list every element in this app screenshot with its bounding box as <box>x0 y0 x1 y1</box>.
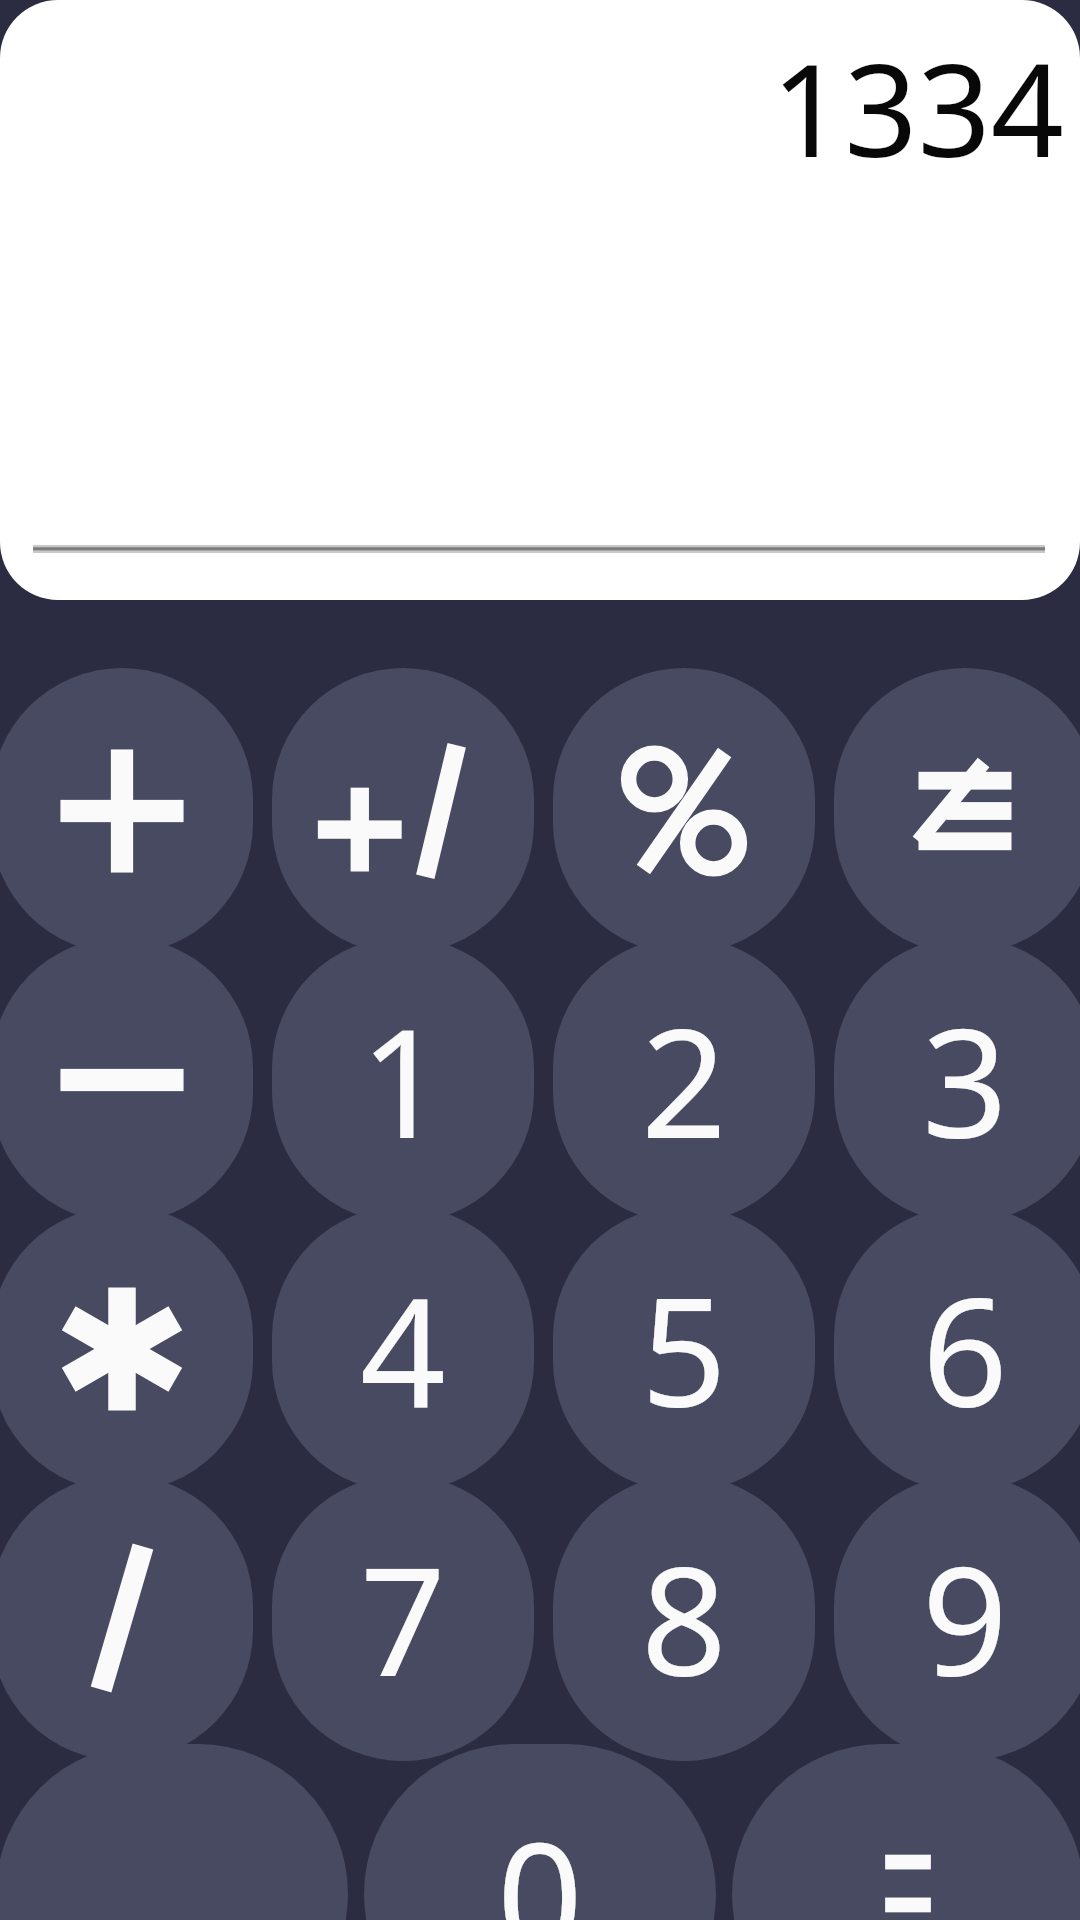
button[interactable]: Plus or minus <box>272 668 534 954</box>
button[interactable]: 6 <box>834 1206 1080 1492</box>
staticText: 1334 <box>771 20 1064 194</box>
staticText: 0 <box>497 1792 583 1920</box>
button[interactable]: Percent <box>553 668 815 954</box>
staticText: 6 <box>922 1247 1008 1451</box>
button[interactable]: Equals <box>732 1744 1080 1920</box>
button[interactable]: 4 <box>272 1206 534 1492</box>
button[interactable]: Decimal point <box>0 1744 348 1920</box>
button[interactable]: 8 <box>553 1475 815 1761</box>
button[interactable]: Divide <box>0 1475 253 1761</box>
staticText: 8 <box>641 1516 727 1720</box>
button[interactable]: 5 <box>553 1206 815 1492</box>
button[interactable]: Clear <box>834 668 1080 954</box>
button[interactable]: 9 <box>834 1475 1080 1761</box>
staticText: 3 <box>922 978 1008 1182</box>
button[interactable]: 7 <box>272 1475 534 1761</box>
button[interactable]: Multiply <box>0 1206 253 1492</box>
staticText: 9 <box>922 1516 1008 1720</box>
button[interactable]: Minus <box>0 937 253 1223</box>
button[interactable]: 3 <box>834 937 1080 1223</box>
staticText: 5 <box>641 1247 727 1451</box>
staticText: 1 <box>360 978 446 1182</box>
button[interactable]: 2 <box>553 937 815 1223</box>
button[interactable]: 1 <box>272 937 534 1223</box>
button[interactable]: 0 <box>364 1744 716 1920</box>
staticText: 2 <box>641 978 727 1182</box>
staticText: 4 <box>360 1247 446 1451</box>
staticText: 7 <box>360 1516 446 1720</box>
button[interactable]: Plus <box>0 668 253 954</box>
